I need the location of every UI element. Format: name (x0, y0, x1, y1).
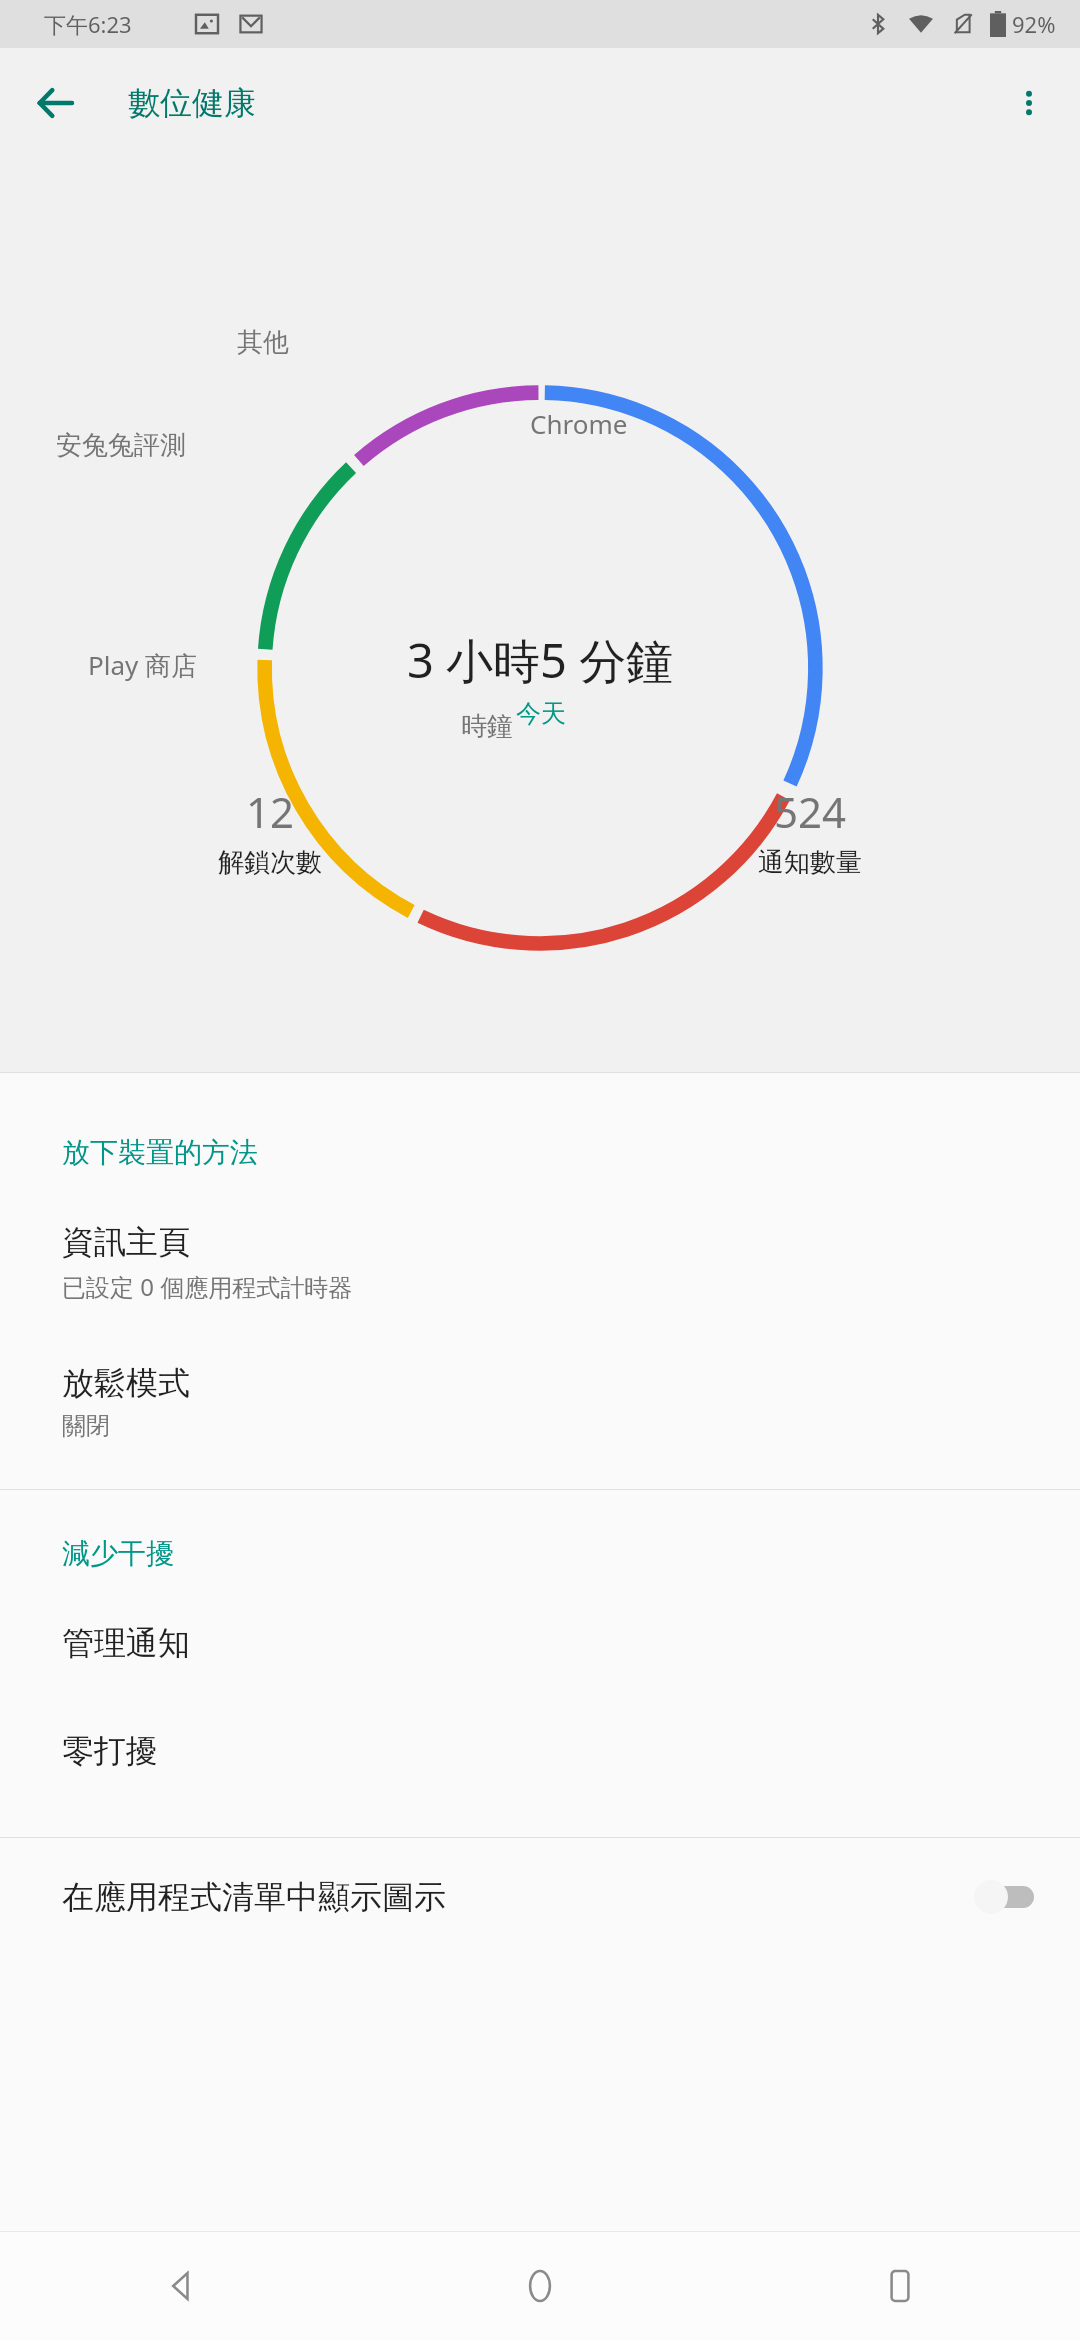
staticText: 其他 (237, 326, 289, 359)
staticText: 解鎖次數 (218, 846, 322, 879)
button[interactable]: 管理通知 (0, 1571, 1080, 1669)
staticText: 92% (1012, 9, 1056, 39)
button[interactable]: 在應用程式清單中顯示圖示 (0, 1838, 1080, 1956)
button[interactable]: 最近使用的應用程式 (720, 2232, 1080, 2340)
staticText: 數位健康 (128, 83, 256, 123)
staticText: 零打擾 (62, 1731, 158, 1771)
staticText: 通知數量 (758, 846, 862, 879)
button[interactable]: 返回 (22, 70, 88, 136)
staticText: 今天 (516, 698, 566, 729)
staticText: 放鬆模式 (62, 1363, 190, 1403)
staticText: 12 (246, 783, 295, 840)
staticText: Chrome (530, 406, 628, 441)
staticText: Play 商店 (88, 647, 198, 683)
staticText: 在應用程式清單中顯示圖示 (62, 1877, 974, 1917)
button[interactable]: 放鬆模式 (0, 1307, 1080, 1445)
staticText: 下午6:23 (44, 9, 132, 39)
staticText: 524 (774, 783, 847, 840)
staticText: 放下裝置的方法 (62, 1135, 258, 1170)
button[interactable]: 返回 (0, 2232, 360, 2340)
staticText: 關閉 (62, 1411, 110, 1441)
button[interactable]: 主畫面 (360, 2232, 720, 2340)
staticText: 3 小時5 分鐘 (407, 628, 674, 692)
staticText: 資訊主頁 (62, 1222, 190, 1262)
staticText: 時鐘 (461, 710, 513, 743)
staticText: 已設定 0 個應用程式計時器 (62, 1270, 353, 1303)
button[interactable]: 更多選項 (996, 70, 1062, 136)
staticText: 減少干擾 (62, 1536, 174, 1571)
staticText: 管理通知 (62, 1623, 190, 1663)
button[interactable]: 零打擾 (0, 1669, 1080, 1777)
staticText: 安兔兔評測 (56, 429, 186, 462)
button[interactable]: 資訊主頁 (0, 1170, 1080, 1307)
